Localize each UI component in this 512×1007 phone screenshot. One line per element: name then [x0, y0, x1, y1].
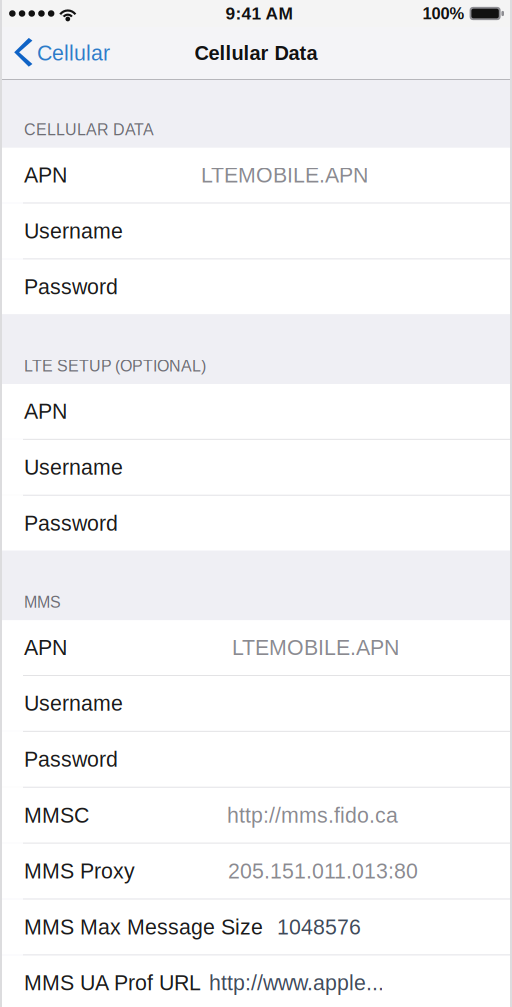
- staticText: MMSC: [24, 803, 89, 827]
- staticText: 205.151.011.013:80: [228, 859, 418, 883]
- staticText: Password: [24, 275, 118, 299]
- button[interactable]: Cellular: [0, 27, 122, 79]
- staticText: Username: [24, 455, 123, 479]
- staticText: CELLULAR DATA: [24, 121, 154, 139]
- staticText: Cellular: [37, 41, 110, 65]
- button[interactable]: MMS Proxy: [0, 844, 512, 899]
- staticText: http://www.apple...: [209, 971, 384, 995]
- staticText: Password: [24, 747, 118, 771]
- staticText: Password: [24, 511, 118, 535]
- button[interactable]: Username: [0, 204, 512, 258]
- staticText: MMS Max Message Size: [24, 915, 263, 939]
- staticText: 1048576: [277, 915, 361, 939]
- button[interactable]: APN: [0, 148, 512, 203]
- button[interactable]: Password: [0, 259, 512, 314]
- staticText: APN: [24, 163, 67, 187]
- staticText: 100%: [423, 4, 465, 23]
- staticText: Cellular Data: [194, 42, 317, 64]
- staticText: LTEMOBILE.APN: [201, 163, 368, 187]
- staticText: MMS UA Prof URL: [24, 971, 201, 995]
- button[interactable]: Password: [0, 732, 512, 787]
- staticText: Username: [24, 219, 123, 243]
- staticText: 9:41 AM: [225, 4, 292, 23]
- staticText: LTEMOBILE.APN: [232, 636, 399, 659]
- button[interactable]: Username: [0, 440, 512, 495]
- button[interactable]: Username: [0, 676, 512, 731]
- staticText: APN: [24, 399, 67, 423]
- button[interactable]: MMSC: [0, 788, 512, 843]
- button[interactable]: MMS UA Prof URL: [0, 955, 512, 1007]
- button[interactable]: APN: [0, 384, 512, 439]
- staticText: http://mms.fido.ca: [227, 803, 398, 827]
- staticText: APN: [24, 636, 67, 659]
- staticText: MMS: [24, 593, 61, 611]
- button[interactable]: APN: [0, 620, 512, 675]
- button[interactable]: MMS Max Message Size: [0, 900, 512, 954]
- staticText: MMS Proxy: [24, 859, 135, 883]
- staticText: Username: [24, 691, 123, 715]
- button[interactable]: Password: [0, 496, 512, 551]
- staticText: LTE SETUP (OPTIONAL): [24, 357, 206, 375]
